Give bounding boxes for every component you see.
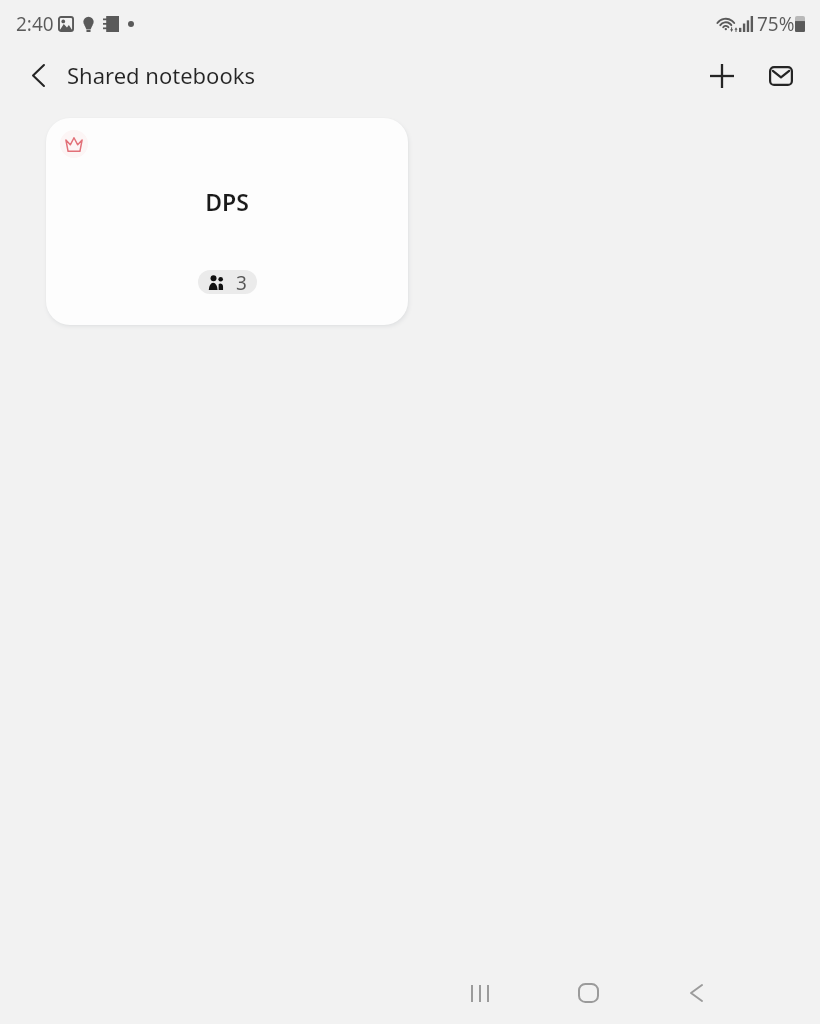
staticText: 2:40: [16, 11, 54, 37]
button[interactable]: Back: [656, 962, 736, 1024]
staticText: Shared notebooks: [67, 60, 256, 90]
button[interactable]: DPS: [46, 118, 408, 325]
button[interactable]: Add: [700, 54, 744, 98]
button[interactable]: Home: [548, 962, 628, 1024]
staticText: 75%: [757, 11, 795, 37]
staticText: DPS: [205, 186, 249, 217]
button[interactable]: Recents: [440, 962, 520, 1024]
button[interactable]: Back: [18, 55, 58, 95]
button[interactable]: Invitations: [759, 54, 803, 98]
staticText: 3: [236, 270, 247, 294]
button[interactable]: 3: [198, 270, 257, 294]
